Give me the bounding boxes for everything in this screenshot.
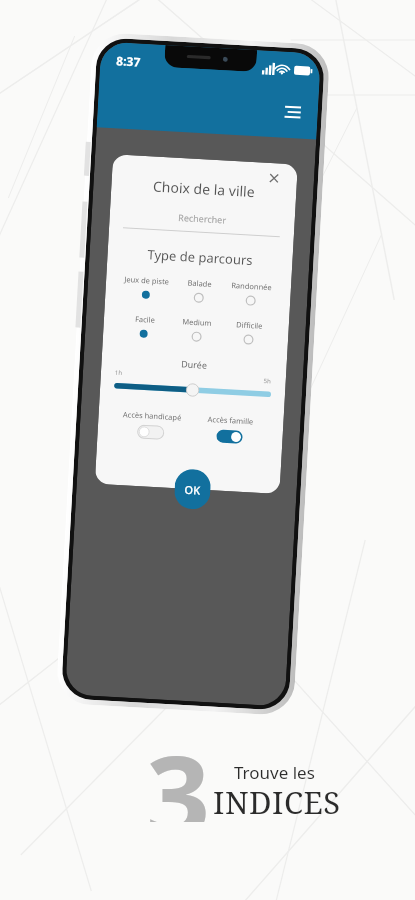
staticText: Jeux de piste	[124, 274, 169, 286]
staticText: Accès famille	[207, 414, 254, 426]
staticText: 8:37	[116, 52, 141, 69]
staticText: Facile	[135, 314, 155, 325]
button[interactable]: Facile	[117, 313, 171, 341]
button[interactable]: Difficile	[222, 319, 275, 346]
button[interactable]: Rechercher	[123, 208, 281, 229]
staticText: 1h	[115, 369, 123, 377]
button[interactable]	[114, 379, 271, 401]
button[interactable]: Menu	[277, 97, 308, 129]
staticText: Trouve les	[234, 761, 315, 784]
button[interactable]: Randonnée	[224, 280, 277, 308]
staticText: OK	[184, 482, 201, 498]
button[interactable]: Accès handicapé	[111, 409, 191, 441]
staticText: Accès handicapé	[122, 409, 182, 422]
button[interactable]: Jeux de piste	[119, 274, 173, 302]
staticText: Balade	[187, 277, 212, 289]
button[interactable]: Balade	[172, 277, 225, 305]
staticText: Type de parcours	[121, 244, 279, 270]
staticText: Choix de la ville	[125, 175, 283, 203]
button[interactable]: Fermer	[265, 169, 284, 188]
staticText: Durée	[115, 354, 273, 374]
button[interactable]: Accès famille	[189, 413, 270, 445]
staticText: 5h	[263, 377, 272, 385]
staticText: Medium	[182, 316, 212, 328]
staticText: INDICES	[213, 781, 341, 823]
staticText: Rechercher	[123, 208, 281, 229]
button[interactable]: OK	[173, 468, 212, 510]
staticText: Randonnée	[231, 280, 272, 292]
staticText: Difficile	[236, 319, 263, 331]
staticText: 3	[146, 717, 211, 822]
button[interactable]: Medium	[170, 316, 223, 344]
